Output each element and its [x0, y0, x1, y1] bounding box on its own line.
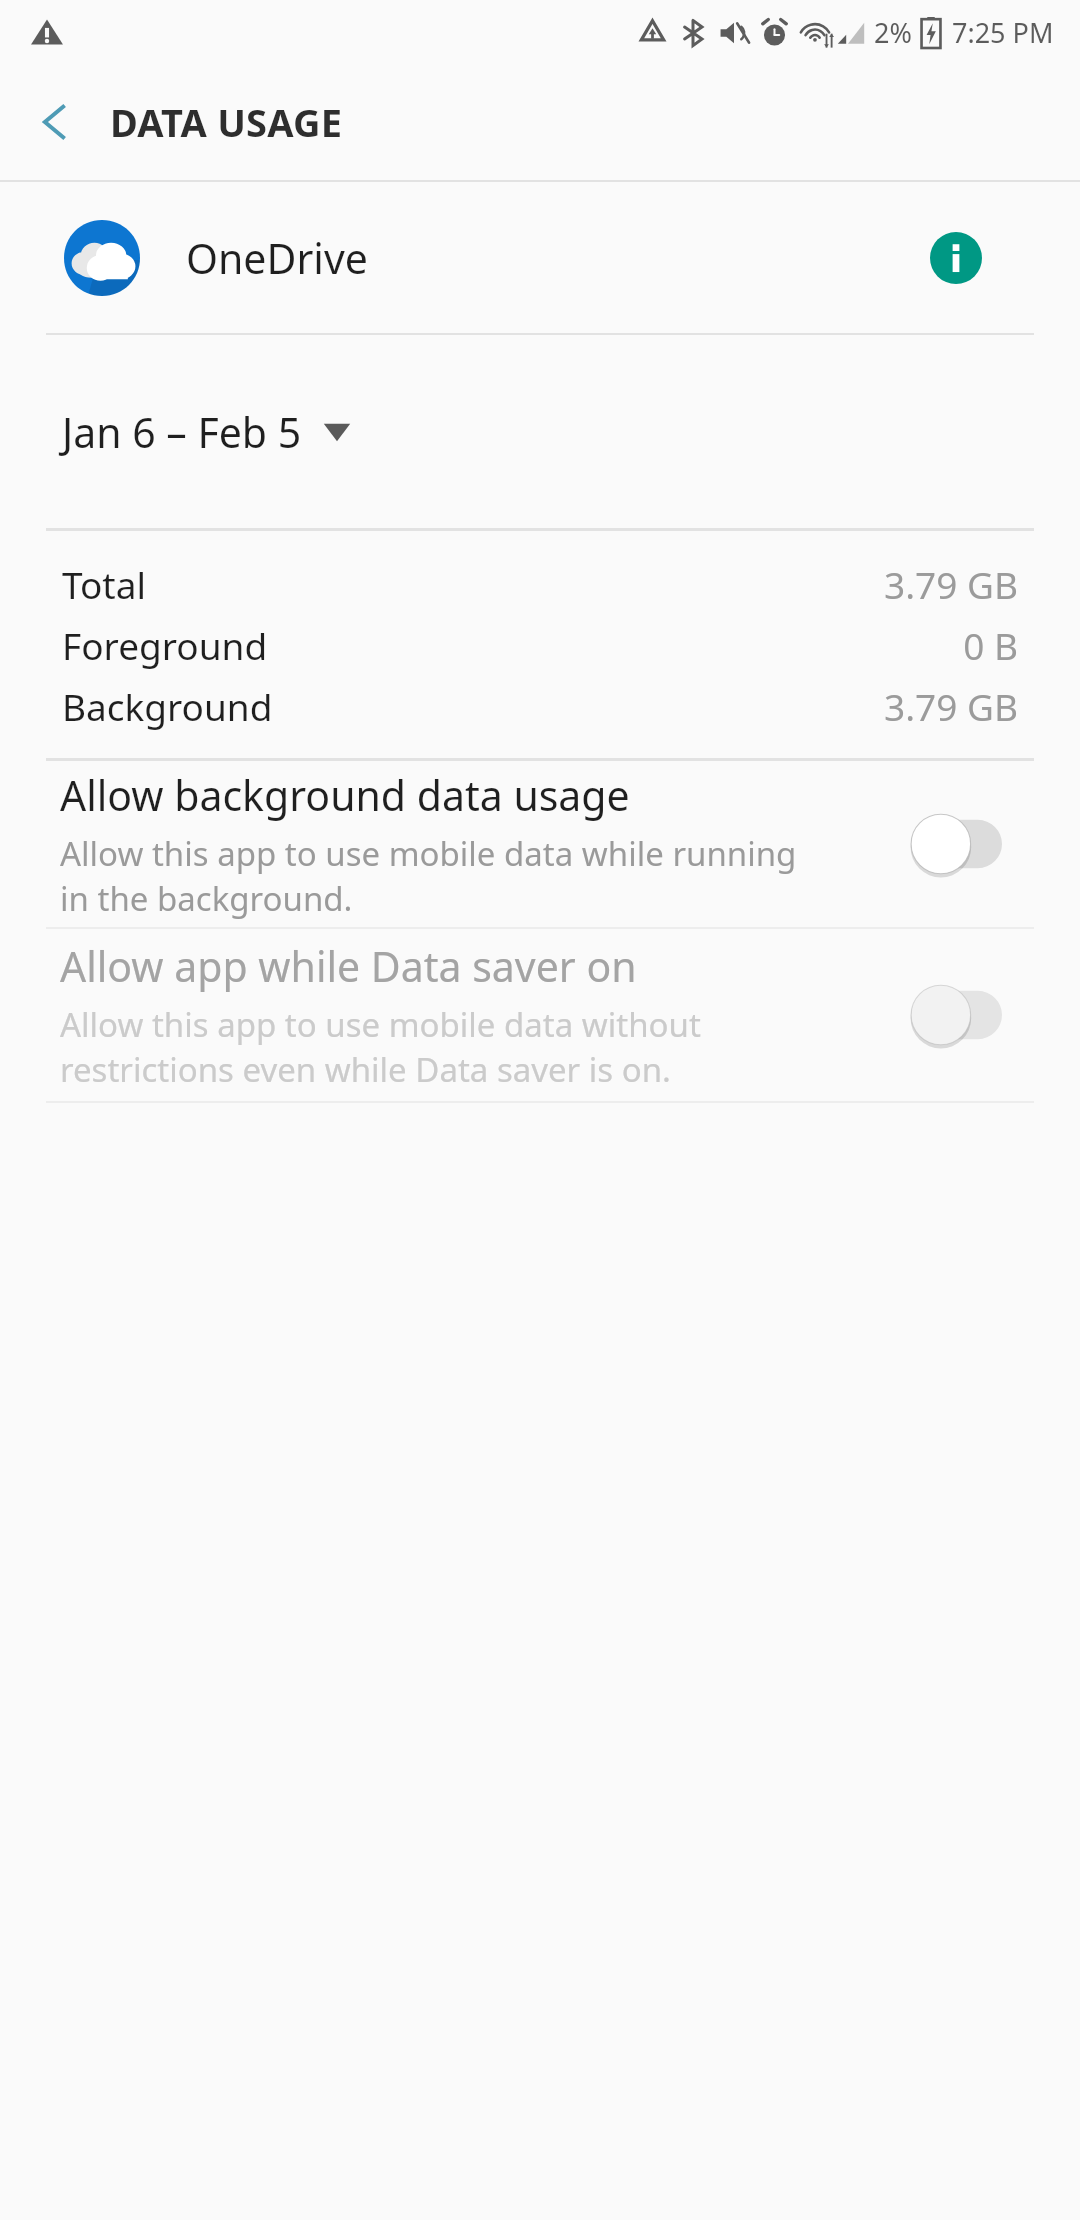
- staticText: Background: [62, 681, 273, 731]
- staticText: Allow this app to use mobile data withou…: [60, 1002, 701, 1047]
- staticText: Allow app while Data saver on: [60, 938, 637, 994]
- staticText: Allow background data usage: [60, 767, 630, 823]
- staticText: in the background.: [60, 876, 353, 921]
- button[interactable]: Back: [22, 90, 86, 154]
- staticText: Foreground: [62, 620, 268, 670]
- staticText: restrictions even while Data saver is on…: [60, 1047, 671, 1092]
- staticText: Total: [62, 559, 147, 609]
- button[interactable]: Allow app while Data saver on: [0, 929, 1080, 1101]
- staticText: 3.79 GB: [883, 559, 1018, 609]
- staticText: OneDrive: [186, 230, 368, 286]
- staticText: 2%: [874, 14, 912, 51]
- button[interactable]: OneDrive: [0, 182, 1080, 333]
- button[interactable]: Allow app while Data saver on toggle: [908, 979, 1004, 1051]
- button[interactable]: Allow background data usage: [0, 761, 1080, 927]
- button[interactable]: App info: [928, 230, 984, 286]
- staticText: DATA USAGE: [110, 96, 343, 148]
- button[interactable]: Jan 6 – Feb 5: [0, 335, 1080, 528]
- button[interactable]: Allow background data usage toggle: [908, 808, 1004, 880]
- staticText: 0 B: [963, 620, 1018, 670]
- staticText: 7:25 PM: [952, 14, 1054, 51]
- staticText: 3.79 GB: [883, 681, 1018, 731]
- staticText: Jan 6 – Feb 5: [62, 404, 302, 460]
- staticText: Allow this app to use mobile data while …: [60, 831, 797, 876]
